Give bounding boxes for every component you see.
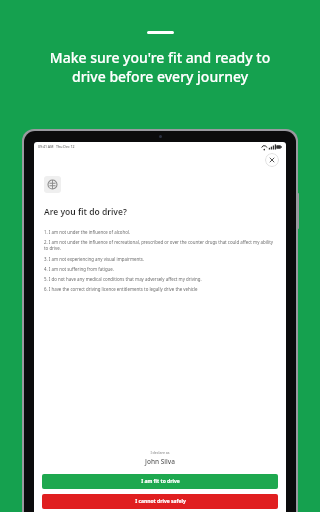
staticText: Make sure you're fit and ready to drive … xyxy=(14,48,306,86)
staticText: Are you fit do drive? xyxy=(44,206,127,218)
staticText: 2. I am not under the influence of recre… xyxy=(44,239,276,252)
staticText: 3. I am not experiencing any visual impa… xyxy=(44,256,276,262)
staticText: 6. I have the correct driving licence en… xyxy=(44,286,276,292)
button[interactable]: I cannot drive safely xyxy=(42,494,278,509)
staticText: I cannot drive safely xyxy=(135,498,186,505)
staticText: 4. I am not suffering from fatigue. xyxy=(44,266,276,272)
staticText: John Silva xyxy=(145,457,175,466)
staticText: I am fit to drive xyxy=(141,478,180,485)
staticText: 09:41 AM Thu Dec 12 xyxy=(38,144,75,149)
staticText: 1. I am not under the influence of alcoh… xyxy=(44,229,276,235)
staticText: I declare as xyxy=(150,450,170,455)
staticText: 5. I do not have any medical conditions … xyxy=(44,276,276,282)
button[interactable]: I am fit to drive xyxy=(42,474,278,489)
button[interactable]: Close xyxy=(265,153,279,167)
